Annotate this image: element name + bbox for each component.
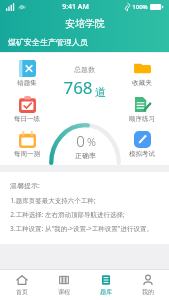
staticText: 每日一练	[14, 115, 40, 123]
button[interactable]: 每日一练	[9, 95, 45, 124]
staticText: 课程	[58, 288, 70, 296]
staticText: 我的	[142, 288, 154, 296]
other: 每日一练	[19, 96, 36, 113]
staticText: 768	[63, 76, 93, 99]
other: 课程	[58, 274, 70, 286]
other: 模拟考试	[134, 131, 151, 148]
staticText: 每周一测	[14, 150, 40, 158]
staticText: 3.工种设置: 从"我的->设置->工种设置"进行设置。	[10, 224, 153, 233]
staticText: 煤矿安全生产管理人员	[8, 37, 88, 47]
staticText: 1.题库页签最大支持六个工种;	[10, 196, 96, 205]
staticText: 正确率	[75, 151, 96, 160]
other: 顺序练习	[134, 96, 151, 113]
staticText: 温馨提示:	[10, 181, 40, 191]
staticText: 模拟考试	[129, 150, 155, 158]
staticText: 题库	[100, 288, 112, 296]
staticText: 100%	[132, 3, 148, 11]
other: 题库	[100, 274, 112, 286]
staticText: 道	[95, 85, 106, 99]
other: 每周一测	[19, 131, 36, 148]
other: 首页	[16, 274, 28, 286]
staticText: 9:41 AM	[62, 2, 89, 12]
staticText: 总题数	[74, 65, 95, 74]
button[interactable]: 煤矿安全生产管理人员	[8, 37, 88, 47]
button[interactable]: 每周一测	[9, 130, 45, 159]
staticText: 收藏夹	[132, 79, 152, 87]
staticText: 0	[76, 131, 85, 151]
button[interactable]: 模拟考试	[124, 130, 160, 159]
other: 收藏夹	[134, 60, 151, 77]
staticText: 安培学院	[65, 17, 105, 30]
staticText: 首页	[16, 288, 28, 296]
other: 错题集	[19, 60, 36, 77]
button[interactable]: 首页	[0, 270, 43, 300]
button[interactable]: 错题集	[9, 59, 45, 88]
staticText: 顺序练习	[129, 115, 155, 123]
button[interactable]: 顺序练习	[124, 95, 160, 124]
button[interactable]: 我的	[127, 270, 169, 300]
staticText: 2.工种选择: 左右滑动顶部导航进行选择;	[10, 210, 125, 219]
staticText: %	[87, 134, 96, 149]
staticText: 错题集	[17, 79, 37, 87]
button[interactable]: 题库	[85, 270, 127, 300]
button[interactable]: 收藏夹	[124, 59, 160, 88]
other: 我的	[142, 274, 154, 286]
button[interactable]: 课程	[43, 270, 85, 300]
